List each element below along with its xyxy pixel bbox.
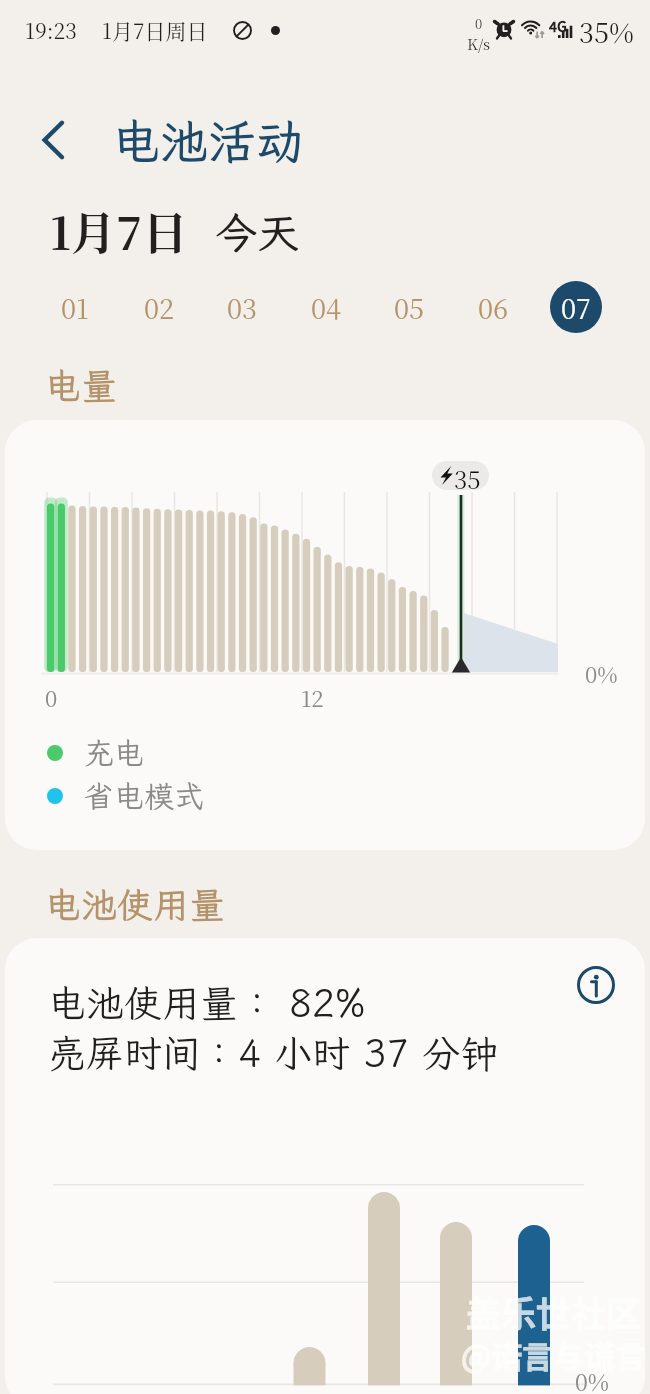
staticText: 01	[61, 288, 89, 327]
staticText: 亮屏时间：4 小时 37 分钟	[48, 1028, 499, 1078]
button[interactable]: Info	[572, 961, 620, 1009]
staticText: 电池使用量	[45, 881, 226, 928]
button[interactable]: 02	[133, 281, 185, 333]
staticText: 04	[311, 288, 342, 327]
staticText: 电池活动	[112, 109, 305, 172]
staticText: 电量	[45, 362, 118, 409]
button[interactable]: 06	[467, 281, 519, 333]
staticText: 02	[144, 288, 175, 327]
staticText: 4G	[549, 16, 567, 36]
staticText: @诺言与谎言	[461, 1332, 645, 1377]
staticText: 0	[475, 14, 483, 33]
staticText: K/s	[467, 33, 491, 55]
button[interactable]: Back	[22, 109, 84, 171]
staticText: 0%	[575, 1365, 610, 1394]
staticText: 充电	[84, 733, 144, 773]
button[interactable]: 01	[49, 281, 101, 333]
button[interactable]: 04	[300, 281, 352, 333]
button[interactable]: 03	[216, 281, 268, 333]
button[interactable]: 05	[383, 281, 435, 333]
staticText: 0	[45, 682, 58, 714]
staticText: 35	[454, 461, 481, 490]
staticText: 0%	[585, 658, 618, 690]
staticText: 盖乐世社区	[466, 1286, 642, 1337]
staticText: 12	[301, 682, 324, 714]
staticText: 35%	[579, 12, 635, 51]
staticText: 19:23	[25, 15, 77, 45]
staticText: 1月7日	[50, 198, 188, 263]
staticText: 今天	[215, 205, 300, 260]
staticText: 1月7日周日	[102, 15, 208, 45]
staticText: 06	[478, 288, 509, 327]
staticText: 05	[394, 288, 425, 327]
staticText: 电池使用量： 82%	[48, 978, 366, 1028]
staticText: 03	[227, 288, 258, 327]
staticText: 省电模式	[84, 776, 204, 816]
button[interactable]: 07	[550, 281, 602, 333]
staticText: 07	[561, 288, 591, 327]
